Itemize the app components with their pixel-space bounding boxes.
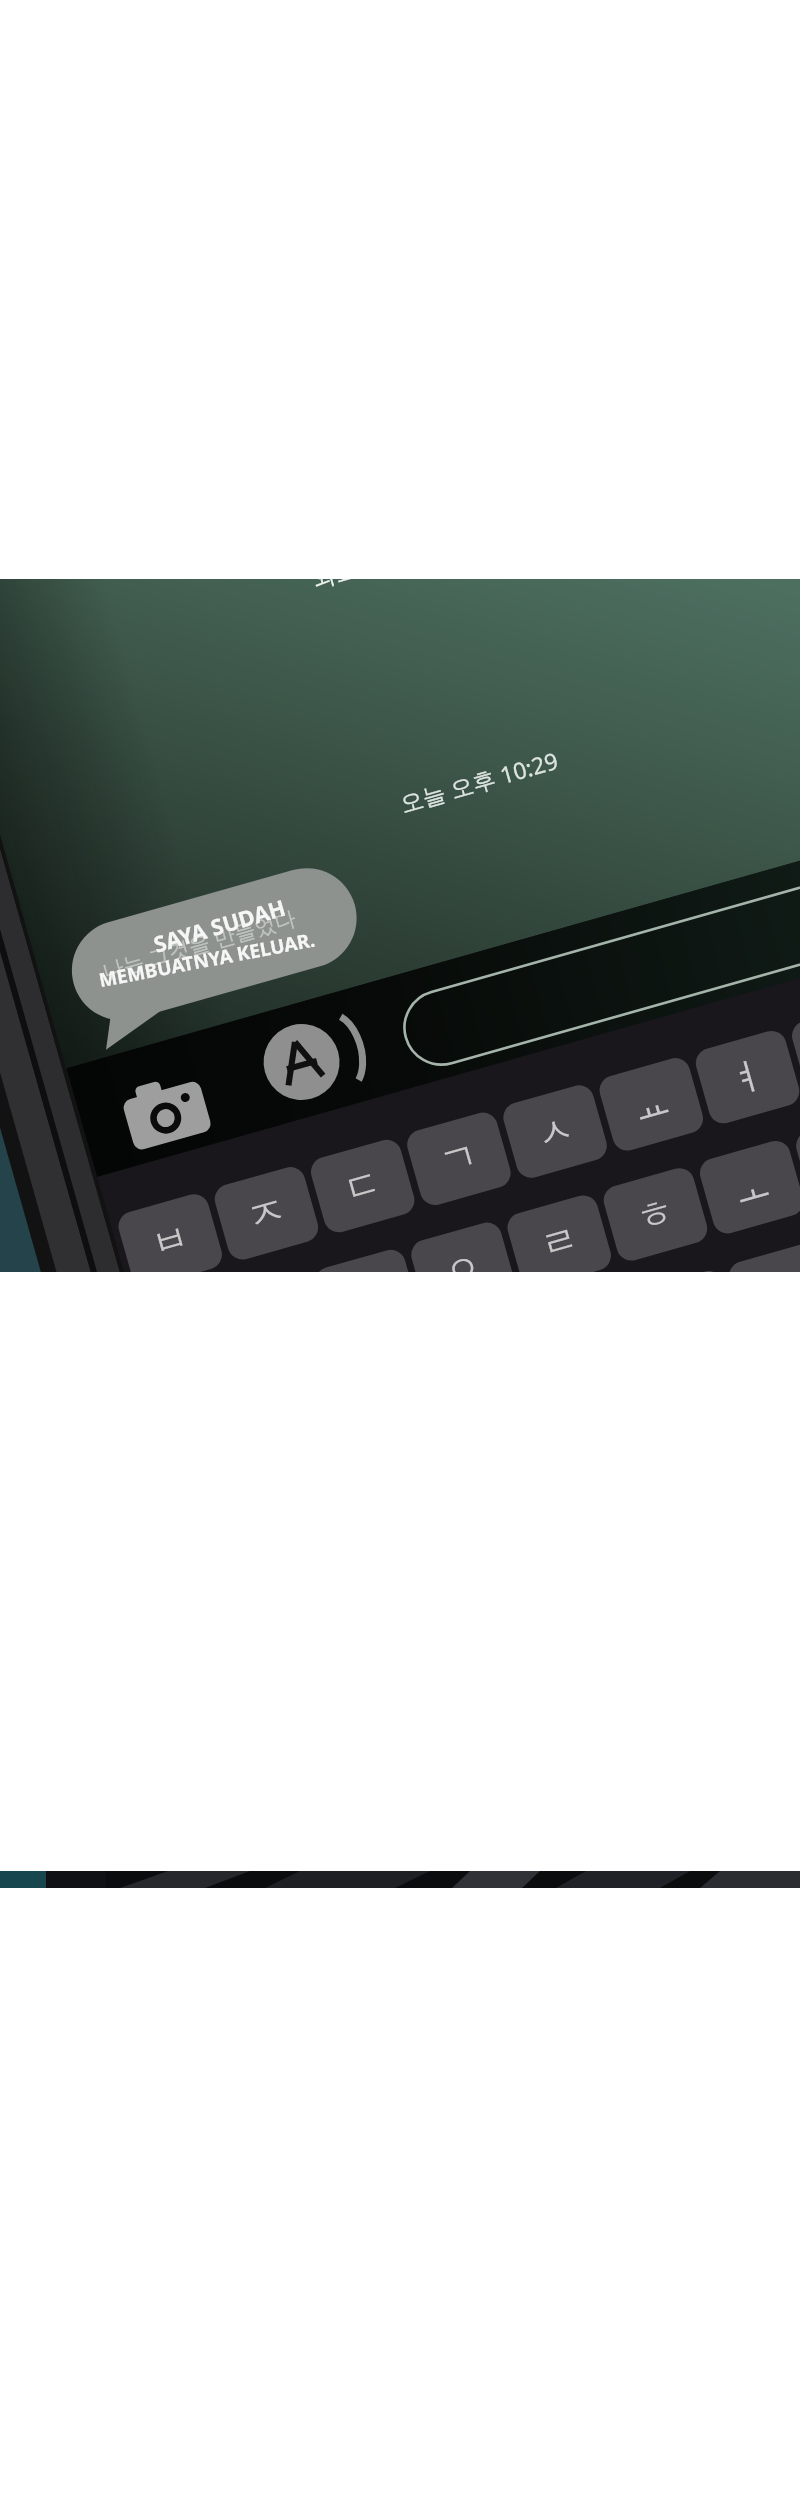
other: Comic panel: tilted phone showing a chat…	[0, 0, 800, 2500]
